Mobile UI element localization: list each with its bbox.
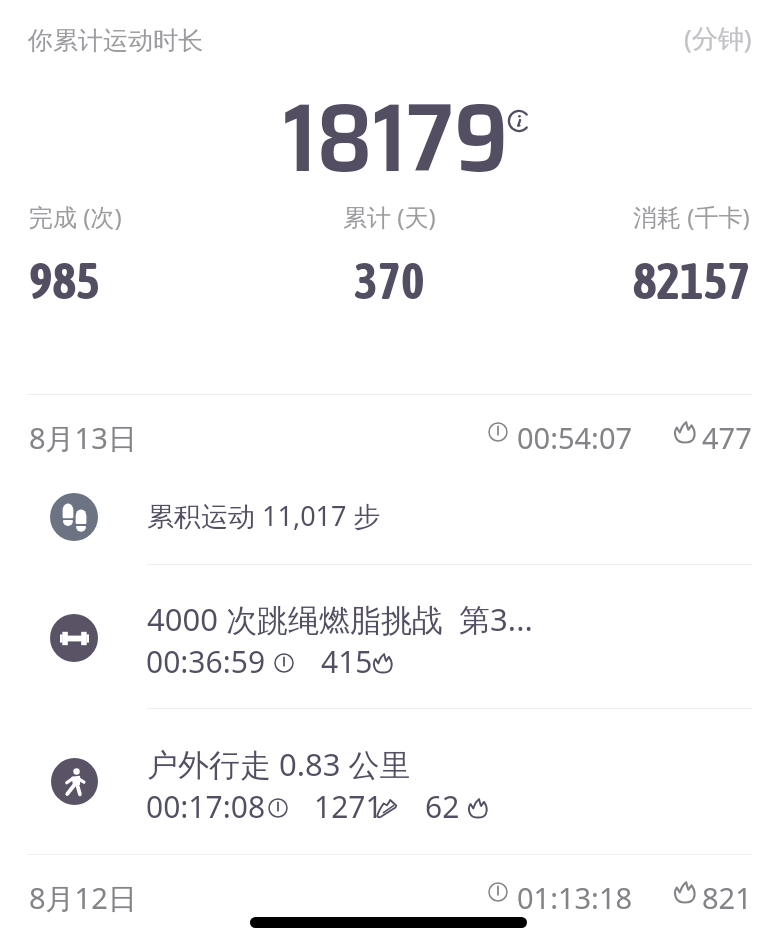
staticText: 00:54:07 [517,418,633,457]
staticText: 户外行走 0.83 公里 [147,743,411,785]
staticText: 01:13:18 [517,878,633,917]
staticText: 你累计运动时长 [28,25,203,56]
staticText: 8月13日 [29,418,137,458]
staticText: 4000 次跳绳燃脂挑战 第3... [147,598,533,640]
button[interactable]: Steps activity [50,493,98,541]
staticText: 消耗 (千卡) [633,200,750,233]
staticText: 累积运动 11,017 步 [147,497,381,534]
staticText: 821 [702,878,752,917]
staticText: 477 [702,418,752,457]
staticText: 82157 [633,252,751,309]
staticText: 1271 [314,786,383,827]
staticText: (分钟) [684,20,752,56]
staticText: 8月12日 [29,878,137,918]
staticText: 00:17:08 [146,786,266,827]
button[interactable]: Walking activity [51,758,98,805]
staticText: 370 [354,252,425,309]
staticText: 62 [425,786,460,827]
button[interactable] [0,406,780,462]
staticText: 18179 [283,62,509,213]
button[interactable] [0,866,780,922]
staticText: 985 [29,252,100,309]
button[interactable]: About total workout minutes [507,109,531,133]
staticText: 00:36:59 [146,641,266,682]
button[interactable]: Workout activity [50,614,98,662]
staticText: 完成 (次) [29,200,122,233]
staticText: 累计 (天) [343,200,436,233]
staticText: 415 [321,641,373,682]
